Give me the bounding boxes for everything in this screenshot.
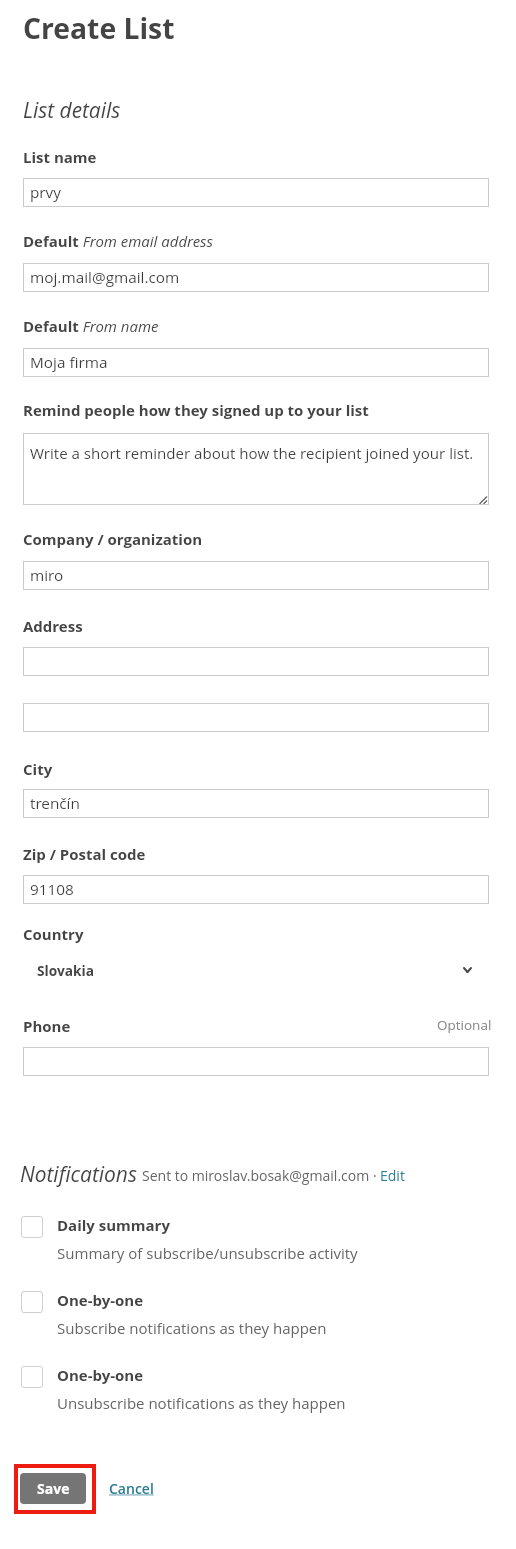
button[interactable]: One-by-one — [21, 1366, 467, 1416]
button[interactable] — [23, 703, 489, 732]
staticText: City — [23, 759, 53, 779]
button[interactable] — [23, 1047, 489, 1076]
staticText: Notifications — [20, 1160, 137, 1189]
staticText: Write a short reminder about how the rec… — [30, 443, 474, 464]
button[interactable]: Cancel — [109, 1479, 154, 1498]
staticText: Sent to miroslav.bosak@gmail.com · — [142, 1166, 377, 1185]
staticText: Remind people how they signed up to your… — [23, 400, 369, 420]
staticText: prvy — [30, 182, 61, 203]
staticText: Summary of subscribe/unsubscribe activit… — [57, 1243, 358, 1263]
staticText: One-by-one — [57, 1290, 144, 1310]
button[interactable]: Country, Slovakia — [23, 956, 489, 984]
button[interactable]: Write a short reminder about how the rec… — [23, 433, 489, 505]
staticText: Default From name — [23, 316, 159, 336]
staticText: Zip / Postal code — [23, 844, 146, 864]
button[interactable]: miro — [23, 561, 489, 590]
staticText: miro — [30, 565, 64, 586]
staticText: 91108 — [30, 879, 74, 900]
button[interactable]: One-by-one — [21, 1291, 467, 1341]
staticText: trenčín — [30, 793, 80, 814]
staticText: Create List — [23, 9, 175, 48]
staticText: Save — [37, 1479, 70, 1498]
button[interactable]: trenčín — [23, 789, 489, 818]
staticText: Default From email address — [23, 231, 213, 251]
staticText: Edit — [380, 1166, 405, 1185]
button[interactable]: Moja firma — [23, 348, 489, 377]
staticText: Company / organization — [23, 529, 203, 549]
staticText: Cancel — [109, 1479, 154, 1498]
staticText: Moja firma — [30, 352, 108, 373]
staticText: Daily summary — [57, 1215, 170, 1235]
staticText: Unsubscribe notifications as they happen — [57, 1393, 346, 1413]
staticText: Country — [23, 924, 84, 944]
button[interactable]: Save — [20, 1473, 86, 1504]
staticText: List details — [23, 96, 121, 125]
staticText: List name — [23, 147, 97, 167]
staticText: moj.mail@gmail.com — [30, 267, 180, 288]
button[interactable]: prvy — [23, 178, 489, 207]
staticText: Subscribe notifications as they happen — [57, 1318, 327, 1338]
staticText: Address — [23, 616, 83, 636]
staticText: Phone — [23, 1016, 71, 1036]
button[interactable]: Daily summary — [21, 1216, 467, 1266]
button[interactable] — [23, 647, 489, 676]
staticText: One-by-one — [57, 1365, 144, 1385]
staticText: Slovakia — [37, 961, 94, 980]
staticText: Optional — [437, 1016, 492, 1034]
button[interactable]: Edit — [380, 1166, 405, 1185]
button[interactable]: 91108 — [23, 875, 489, 904]
button[interactable]: moj.mail@gmail.com — [23, 263, 489, 292]
